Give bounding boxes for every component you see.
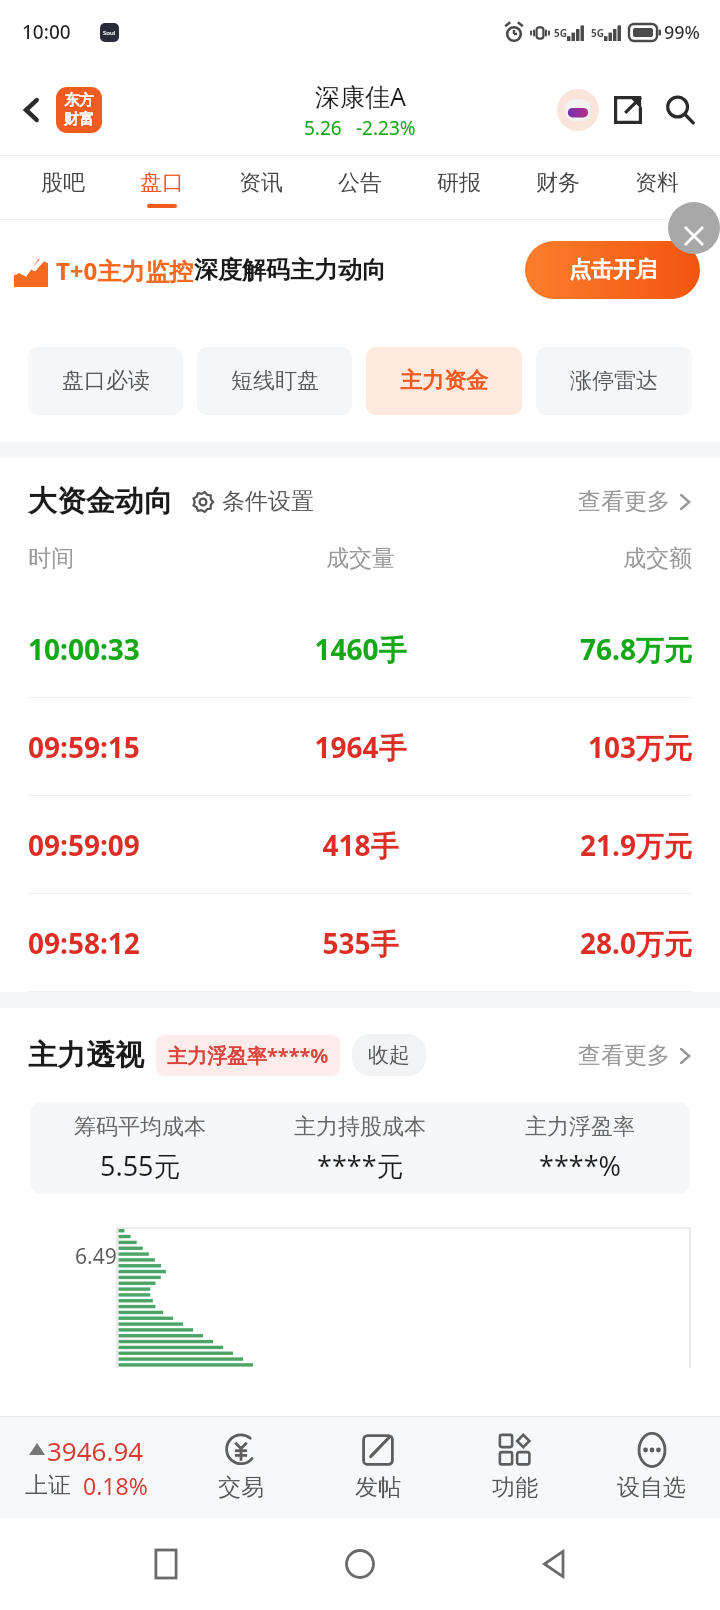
staticText: 资讯 [239, 169, 283, 197]
button[interactable]: 点击开启 [525, 241, 700, 299]
staticText: 发帖 [355, 1473, 401, 1502]
staticText: 财务 [536, 169, 580, 197]
staticText: ****% [539, 1147, 621, 1184]
button[interactable]: 涨停雷达 [536, 347, 692, 415]
staticText: 资料 [635, 169, 679, 197]
staticText: 09:59:09 [28, 826, 250, 864]
button[interactable]: 盘口 [112, 156, 211, 220]
staticText: 筹码平均成本 [74, 1113, 206, 1141]
button[interactable]: 09:59:15 [0, 698, 720, 796]
staticText: 涨停雷达 [570, 367, 658, 395]
button[interactable]: 09:59:09 [0, 796, 720, 894]
button[interactable]: 查看更多 [578, 487, 692, 516]
staticText: 1964手 [250, 728, 471, 766]
staticText: 短线盯盘 [231, 367, 319, 395]
staticText: 5.55元 [100, 1147, 181, 1184]
staticText: 主力透视 [28, 1037, 144, 1074]
staticText: 09:58:12 [28, 924, 250, 962]
staticText: 主力浮盈率****% [167, 1042, 329, 1069]
staticText: 条件设置 [222, 487, 314, 516]
staticText: 盘口 [140, 169, 184, 197]
staticText: 功能 [492, 1473, 538, 1502]
staticText: 3946.94 [47, 1433, 144, 1468]
button[interactable]: 主力资金 [366, 347, 522, 415]
button[interactable]: 筹码平均成本 [30, 1102, 690, 1194]
button[interactable]: 09:58:12 [0, 894, 720, 992]
staticText: 点击开启 [569, 256, 657, 284]
staticText: 成交量 [250, 544, 471, 573]
button[interactable]: 短线盯盘 [197, 347, 352, 415]
staticText: 交易 [218, 1473, 264, 1502]
staticText: 1460手 [250, 630, 471, 668]
staticText: 10:00 [22, 19, 71, 45]
button[interactable]: 发帖 [309, 1416, 446, 1518]
staticText: 5G [554, 26, 567, 40]
staticText: 76.8万元 [471, 630, 692, 668]
staticText: 09:59:15 [28, 728, 250, 766]
button[interactable]: 查看更多 [578, 1041, 692, 1070]
staticText: 0.18% [83, 1470, 148, 1501]
staticText: ****元 [317, 1147, 404, 1184]
staticText: 成交额 [471, 544, 692, 573]
staticText: 深度解码主力动向 [194, 255, 386, 285]
button[interactable]: 交易 [172, 1416, 309, 1518]
button[interactable]: Back [8, 86, 56, 134]
staticText: 主力资金 [400, 367, 488, 395]
staticText: 99% [664, 20, 700, 45]
button[interactable]: Search [654, 84, 706, 136]
staticText: T+0主力监控 [56, 254, 194, 287]
staticText: 10:00:33 [28, 630, 250, 668]
staticText: 财富 [64, 110, 94, 129]
staticText: 盘口必读 [62, 367, 150, 395]
staticText: 5.26 [304, 115, 342, 141]
staticText: Soul [103, 29, 116, 37]
button[interactable]: 研报 [409, 156, 508, 220]
button[interactable]: Recents [138, 1536, 194, 1592]
button[interactable]: Back [526, 1536, 582, 1592]
staticText: 主力浮盈率 [525, 1113, 635, 1141]
staticText: 公告 [338, 169, 382, 197]
button[interactable]: 10:00:33 [0, 600, 720, 698]
button[interactable]: 资料 [607, 156, 706, 220]
button[interactable]: 财务 [508, 156, 607, 220]
staticText: 28.0万元 [471, 924, 692, 962]
button[interactable]: 股吧 [14, 156, 112, 220]
button[interactable]: 盘口必读 [28, 347, 183, 415]
staticText: 上证 [25, 1471, 71, 1500]
staticText: -2.23% [356, 115, 416, 141]
staticText: 研报 [437, 169, 481, 197]
staticText: 5G [591, 26, 604, 40]
staticText: 103万元 [471, 728, 692, 766]
staticText: 设自选 [617, 1473, 686, 1502]
button[interactable]: 收起 [368, 1042, 410, 1068]
staticText: 21.9万元 [471, 826, 692, 864]
staticText: 查看更多 [578, 1041, 670, 1070]
button[interactable]: 公告 [310, 156, 409, 220]
button[interactable]: 3946.94 [0, 1416, 172, 1518]
staticText: 时间 [28, 544, 250, 573]
button[interactable]: Home [332, 1536, 388, 1592]
button[interactable]: East Money [56, 87, 102, 133]
staticText: 收起 [368, 1042, 410, 1068]
staticText: 深康佳A [315, 79, 406, 113]
button[interactable]: Close [668, 202, 720, 254]
staticText: 东方 [64, 91, 94, 110]
staticText: 6.49 [75, 1242, 117, 1271]
button[interactable]: Share [602, 84, 654, 136]
button[interactable]: Assistant [554, 86, 602, 134]
staticText: 535手 [250, 924, 471, 962]
button[interactable]: 资讯 [211, 156, 310, 220]
staticText: 股吧 [41, 169, 85, 197]
staticText: 查看更多 [578, 487, 670, 516]
button[interactable]: 设自选 [583, 1416, 720, 1518]
button[interactable]: 主力浮盈率****% [167, 1042, 329, 1069]
staticText: 418手 [250, 826, 471, 864]
button[interactable]: 功能 [446, 1416, 583, 1518]
staticText: 大资金动向 [28, 483, 173, 520]
staticText: 主力持股成本 [294, 1113, 426, 1141]
button[interactable]: 条件设置 [191, 487, 314, 516]
